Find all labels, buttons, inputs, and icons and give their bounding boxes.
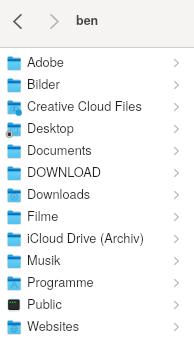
button[interactable]: Public xyxy=(0,294,194,316)
button[interactable]: Forward xyxy=(34,0,70,42)
button[interactable]: Bilder xyxy=(0,74,194,96)
staticText: Filme xyxy=(27,206,158,224)
button[interactable]: Programme xyxy=(0,272,194,294)
staticText: Bilder xyxy=(27,74,158,92)
staticText: iCloud Drive (Archiv) xyxy=(27,228,158,246)
staticText: Public xyxy=(27,294,158,312)
staticText: Websites xyxy=(27,316,158,334)
button[interactable]: Back xyxy=(0,0,34,42)
staticText: Documents xyxy=(27,140,158,158)
staticText: DOWNLOAD xyxy=(27,162,158,180)
button[interactable]: Filme xyxy=(0,206,194,228)
staticText: Adobe xyxy=(27,52,158,70)
button[interactable]: Adobe xyxy=(0,52,194,74)
staticText: Desktop xyxy=(27,118,158,136)
staticText: ben xyxy=(76,11,99,29)
staticText: Musik xyxy=(27,250,158,268)
button[interactable]: Websites xyxy=(0,316,194,338)
staticText: Programme xyxy=(27,272,158,290)
button[interactable]: Musik xyxy=(0,250,194,272)
button[interactable]: Downloads xyxy=(0,184,194,206)
button[interactable]: Desktop xyxy=(0,118,194,140)
button[interactable]: DOWNLOAD xyxy=(0,162,194,184)
button[interactable]: iCloud Drive (Archiv) xyxy=(0,228,194,250)
staticText: Creative Cloud Files xyxy=(27,96,158,114)
staticText: Downloads xyxy=(27,184,158,202)
button[interactable]: Creative Cloud Files xyxy=(0,96,194,118)
button[interactable]: Documents xyxy=(0,140,194,162)
